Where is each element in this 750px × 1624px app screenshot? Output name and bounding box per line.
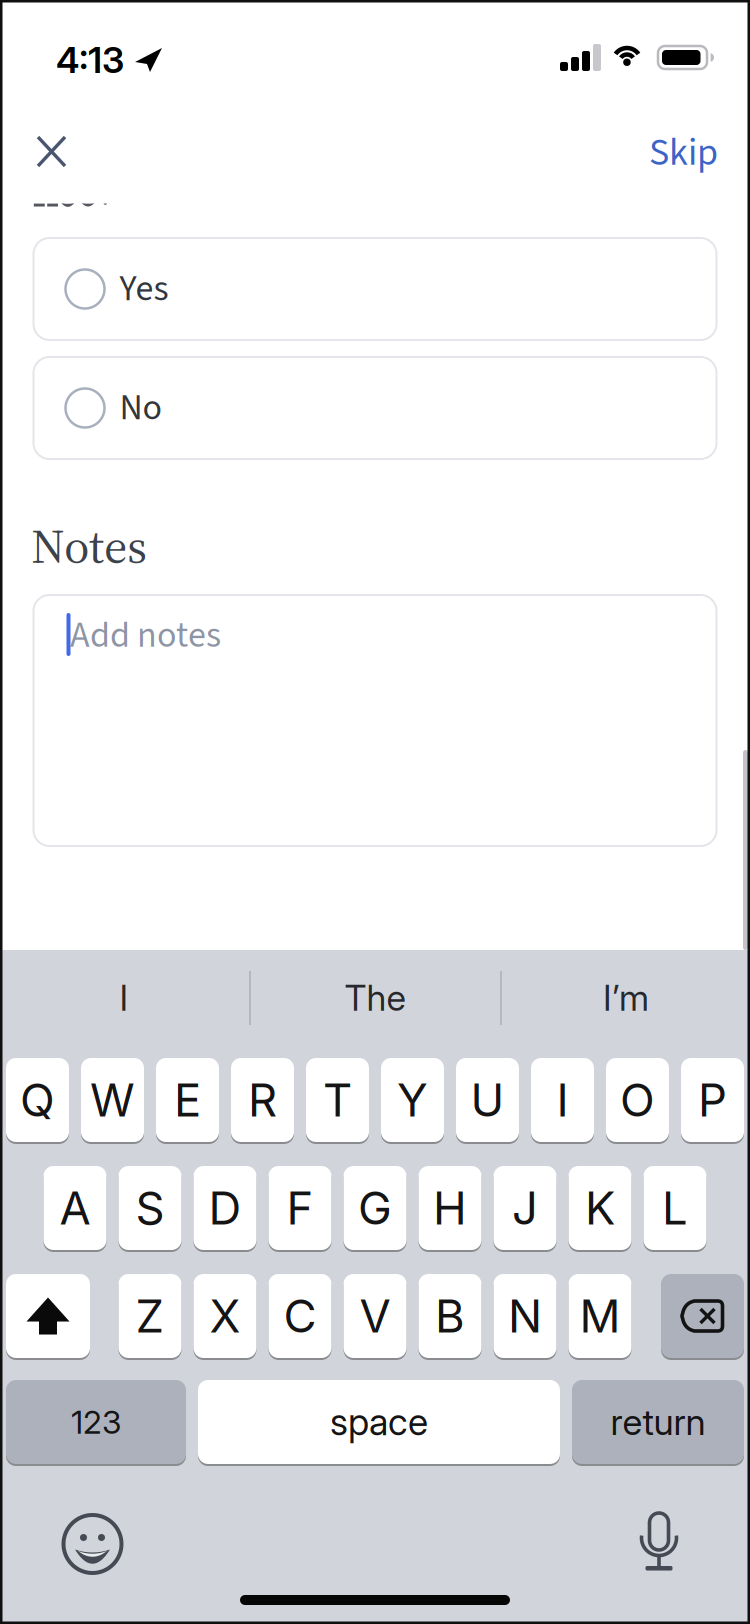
button[interactable]: C xyxy=(268,1273,331,1359)
staticText: P xyxy=(698,1073,727,1127)
staticText: M xyxy=(579,1289,620,1343)
button[interactable]: H xyxy=(418,1165,481,1251)
button[interactable]: I xyxy=(531,1057,594,1143)
button[interactable]: O xyxy=(606,1057,669,1143)
button[interactable]: G xyxy=(343,1165,406,1251)
button[interactable]: F xyxy=(268,1165,331,1251)
staticText: Q xyxy=(20,1073,55,1127)
button[interactable]: S xyxy=(118,1165,181,1251)
staticText: V xyxy=(359,1289,390,1343)
button[interactable] xyxy=(640,1513,678,1571)
staticText: C xyxy=(283,1289,316,1343)
staticText: D xyxy=(208,1181,241,1235)
staticText: K xyxy=(585,1181,615,1235)
button[interactable]: Z xyxy=(118,1273,181,1359)
staticText: H xyxy=(433,1181,467,1235)
button[interactable]: I xyxy=(0,960,248,1036)
button[interactable]: Q xyxy=(6,1057,69,1143)
button[interactable]: V xyxy=(343,1273,406,1359)
staticText: R xyxy=(248,1073,277,1127)
button[interactable]: A xyxy=(43,1165,106,1251)
staticText: 4:13 xyxy=(56,38,124,82)
button[interactable] xyxy=(38,137,65,166)
staticText: 123 xyxy=(71,1403,121,1441)
button[interactable]: R xyxy=(231,1057,294,1143)
button[interactable]: T xyxy=(306,1057,369,1143)
button[interactable]: B xyxy=(418,1273,481,1359)
staticText: U xyxy=(470,1073,504,1127)
staticText: I xyxy=(556,1073,568,1127)
staticText: Add notes xyxy=(70,610,221,661)
staticText: E xyxy=(174,1073,201,1127)
button[interactable]: space xyxy=(198,1379,560,1465)
button[interactable] xyxy=(6,1273,90,1359)
staticText: A xyxy=(59,1181,90,1235)
staticText: The xyxy=(344,977,405,1019)
staticText: F xyxy=(286,1181,313,1235)
staticText: Notes xyxy=(31,513,147,579)
staticText: L xyxy=(662,1181,688,1235)
staticText: space xyxy=(330,1400,428,1444)
button[interactable]: Add notes xyxy=(33,595,716,846)
button[interactable]: return xyxy=(572,1379,744,1465)
staticText: T xyxy=(323,1073,352,1127)
staticText: I’m xyxy=(603,977,649,1019)
staticText: J xyxy=(512,1181,538,1235)
button[interactable]: I’m xyxy=(502,960,750,1036)
staticText: X xyxy=(209,1289,240,1343)
staticText: Y xyxy=(397,1073,428,1127)
button[interactable]: P xyxy=(681,1057,744,1143)
staticText: B xyxy=(435,1289,465,1343)
staticText: No xyxy=(119,382,162,434)
staticText: G xyxy=(358,1181,392,1235)
button[interactable]: J xyxy=(493,1165,556,1251)
button[interactable]: U xyxy=(456,1057,519,1143)
staticText: Skip xyxy=(649,126,718,180)
button[interactable]: K xyxy=(568,1165,631,1251)
button[interactable]: Skip xyxy=(518,123,718,183)
button[interactable]: D xyxy=(193,1165,256,1251)
button[interactable] xyxy=(661,1273,744,1359)
button[interactable]: Y xyxy=(381,1057,444,1143)
staticText: N xyxy=(508,1289,542,1343)
button[interactable]: No xyxy=(33,357,716,459)
button[interactable]: N xyxy=(493,1273,556,1359)
button[interactable]: X xyxy=(193,1273,256,1359)
button[interactable]: 123 xyxy=(6,1379,186,1465)
staticText: return xyxy=(610,1400,705,1444)
button[interactable]: L xyxy=(643,1165,706,1251)
staticText: W xyxy=(90,1073,135,1127)
button[interactable]: Yes xyxy=(33,238,716,340)
button[interactable]: W xyxy=(81,1057,144,1143)
staticText: O xyxy=(620,1073,655,1127)
staticText: Z xyxy=(135,1289,164,1343)
staticText: Yes xyxy=(119,263,168,315)
staticText: S xyxy=(135,1181,164,1235)
staticText: I xyxy=(119,977,128,1019)
button[interactable]: E xyxy=(156,1057,219,1143)
button[interactable]: M xyxy=(568,1273,631,1359)
button[interactable] xyxy=(63,1515,121,1573)
button[interactable]: The xyxy=(251,960,499,1036)
